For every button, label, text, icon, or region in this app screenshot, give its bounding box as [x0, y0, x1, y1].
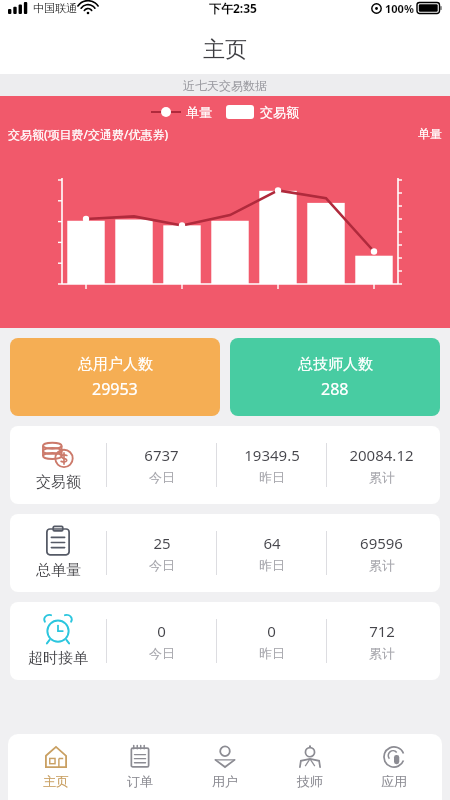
staticText: 总单量 [36, 561, 81, 580]
staticText: 交易额(项目费/交通费/优惠券) [8, 126, 169, 142]
staticText: 近七天交易数据 [183, 78, 267, 93]
staticText: 19349.5 [244, 445, 300, 465]
staticText: 累计 [369, 469, 395, 485]
staticText: 单量 [418, 126, 442, 141]
staticText: 今日 [149, 645, 175, 661]
staticText: 25 [153, 533, 171, 553]
staticText: 69596 [360, 533, 403, 553]
staticText: 712 [369, 621, 395, 641]
staticText: 昨日 [259, 645, 285, 661]
button[interactable]: 超时接单 [10, 602, 440, 680]
staticText: 总技师人数 [298, 355, 373, 374]
button[interactable]: 技师 [273, 739, 347, 795]
staticText: 昨日 [259, 469, 285, 485]
staticText: 应用 [381, 773, 407, 789]
staticText: 累计 [369, 557, 395, 573]
staticText: 订单 [127, 773, 153, 789]
button[interactable]: 应用 [357, 739, 431, 795]
staticText: 主页 [203, 36, 247, 64]
button[interactable]: 总单量 [10, 514, 440, 592]
staticText: 昨日 [259, 557, 285, 573]
button[interactable]: 总技师人数 [230, 338, 440, 416]
staticText: 64 [263, 533, 281, 553]
staticText: 累计 [369, 645, 395, 661]
staticText: 用户 [212, 773, 238, 789]
staticText: 下午2:35 [209, 0, 257, 16]
button[interactable]: 主页 [19, 739, 93, 795]
staticText: 6737 [144, 445, 179, 465]
staticText: 中国联通 [33, 1, 77, 15]
staticText: 今日 [149, 469, 175, 485]
button[interactable]: 总用户人数 [10, 338, 220, 416]
staticText: 20084.12 [349, 445, 414, 465]
staticText: 交易额 [36, 473, 81, 492]
staticText: 0 [267, 621, 276, 641]
staticText: 29953 [92, 378, 138, 400]
staticText: 288 [321, 378, 349, 400]
staticText: 超时接单 [28, 649, 88, 668]
staticText: 100% [385, 1, 414, 16]
staticText: 单量 [186, 104, 212, 120]
staticText: 技师 [297, 773, 323, 789]
button[interactable]: 交易额 [10, 426, 440, 504]
staticText: 今日 [149, 557, 175, 573]
staticText: 主页 [43, 773, 69, 789]
staticText: 总用户人数 [78, 355, 153, 374]
button[interactable]: 用户 [188, 739, 262, 795]
staticText: 交易额 [260, 104, 299, 120]
staticText: 0 [157, 621, 166, 641]
button[interactable]: 订单 [103, 739, 177, 795]
